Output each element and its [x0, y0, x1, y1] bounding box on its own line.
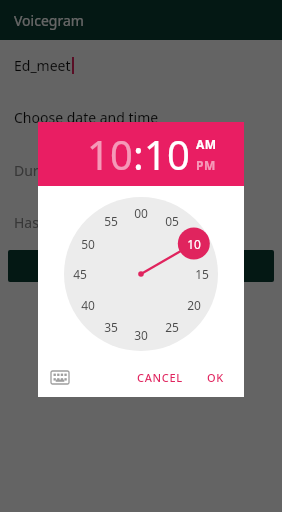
button[interactable]: 10	[144, 127, 190, 181]
staticText: OK	[207, 370, 224, 385]
staticText: 00	[134, 205, 148, 221]
button[interactable]: AM	[196, 136, 217, 152]
button[interactable]: Switch to text input mode	[48, 365, 72, 389]
staticText: Choose date and time	[14, 108, 159, 127]
button[interactable]: PM	[196, 157, 216, 173]
staticText: CANCEL	[137, 370, 183, 385]
staticText: 50	[81, 236, 95, 252]
staticText: Ed_meet	[14, 56, 71, 75]
staticText: Hashtags	[14, 213, 76, 232]
button[interactable]: Choose date and time	[0, 102, 282, 132]
staticText: Voicegram	[14, 11, 84, 30]
staticText: 35	[104, 319, 118, 335]
staticText: 15	[195, 266, 209, 282]
staticText: 10	[87, 127, 133, 181]
staticText: Duration	[14, 161, 73, 180]
staticText: 25	[165, 319, 179, 335]
staticText: AM	[196, 136, 217, 152]
staticText: 10	[144, 127, 190, 181]
staticText: SUBMIT	[118, 258, 164, 274]
button[interactable]: OK	[199, 364, 232, 391]
button[interactable]: CANCEL	[129, 364, 191, 391]
staticText: 20	[187, 297, 201, 313]
button[interactable]: 10	[87, 127, 133, 181]
staticText: 45	[73, 266, 87, 282]
staticText: 10	[187, 236, 201, 252]
staticText: 05	[165, 213, 179, 229]
staticText: 40	[81, 297, 95, 313]
staticText: 55	[104, 213, 118, 229]
staticText: 30	[134, 327, 148, 343]
staticText: PM	[196, 157, 216, 173]
staticText: :	[133, 127, 144, 181]
button[interactable]: SUBMIT	[8, 250, 274, 282]
